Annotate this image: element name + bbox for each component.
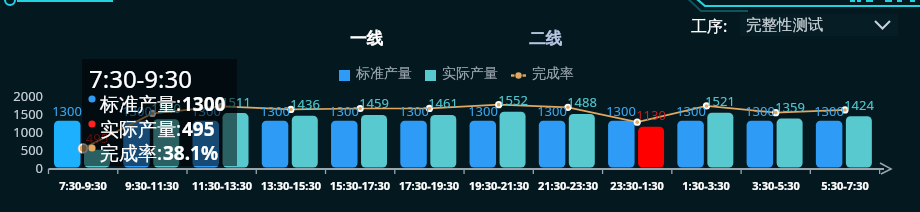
staticText: 1300 [769, 102, 889, 120]
staticText: 1300 [631, 102, 751, 120]
staticText: 完整性测试 [746, 15, 824, 35]
staticText: 完成率: [100, 140, 163, 166]
staticText: 1300 [561, 102, 681, 120]
staticText: 1521 [660, 92, 780, 110]
staticText: 工序: [691, 15, 728, 37]
staticText: 5:30-7:30 [785, 178, 905, 193]
other: Open process dropdown [874, 20, 891, 30]
staticText: 19:30-21:30 [439, 178, 559, 193]
staticText: 38.1% [163, 140, 219, 166]
staticText: 1130 [591, 106, 711, 124]
staticText: 二线 [529, 28, 562, 49]
staticText: 17:30-19:30 [369, 178, 489, 193]
staticText: 1488 [522, 93, 642, 111]
staticText: 1552 [453, 91, 573, 109]
staticText: 15:30-17:30 [300, 178, 420, 193]
staticText: 1359 [730, 98, 850, 116]
staticText: 9:30-11:30 [92, 178, 212, 193]
staticText: 1300 [215, 102, 335, 120]
staticText: 1300 [354, 102, 474, 120]
staticText: 实际产量 [442, 65, 498, 83]
button[interactable]: 标准产量 [339, 65, 406, 83]
staticText: 0 [0, 159, 43, 177]
staticText: 1300 [700, 102, 820, 120]
staticText: 7:30-9:30 [23, 178, 143, 193]
button[interactable]: 一线 [350, 28, 383, 49]
button[interactable]: 完整性测试 [740, 14, 898, 36]
staticText: 11:30-13:30 [162, 178, 282, 193]
staticText: 标准产量: [100, 91, 182, 117]
staticText: 1500 [0, 105, 43, 123]
staticText: 1300 [284, 102, 404, 120]
staticText: 完成率 [532, 65, 574, 83]
staticText: 实际产量: [100, 116, 182, 142]
staticText: 1300 [492, 102, 612, 120]
staticText: 1000 [0, 123, 43, 141]
button[interactable]: 二线 [529, 28, 562, 49]
staticText: 21:30-23:30 [508, 178, 628, 193]
staticText: 1424 [799, 96, 919, 114]
staticText: 1300 [146, 102, 266, 120]
staticText: 500 [0, 141, 43, 159]
staticText: 1461 [383, 94, 503, 112]
staticText: 1511 [176, 93, 296, 111]
staticText: 13:30-15:30 [231, 178, 351, 193]
staticText: 23:30-1:30 [577, 178, 697, 193]
staticText: 1459 [314, 94, 434, 112]
staticText: 1300 [182, 91, 226, 117]
button[interactable]: 实际产量 [425, 65, 492, 83]
staticText: 1340 [106, 99, 226, 117]
staticText: 1436 [245, 95, 365, 113]
staticText: 一线 [350, 28, 383, 49]
staticText: 1:30-3:30 [646, 178, 766, 193]
staticText: 标准产量 [356, 65, 412, 83]
staticText: 1300 [423, 102, 543, 120]
staticText: 1300 [7, 102, 127, 120]
staticText: 495 [37, 129, 157, 147]
staticText: 3:30-5:30 [716, 178, 836, 193]
staticText: 495 [182, 116, 215, 142]
staticText: 2000 [0, 87, 43, 105]
staticText: 7:30-9:30 [89, 62, 192, 95]
staticText: 1300 [77, 102, 197, 120]
button[interactable]: 完成率 [511, 65, 568, 83]
